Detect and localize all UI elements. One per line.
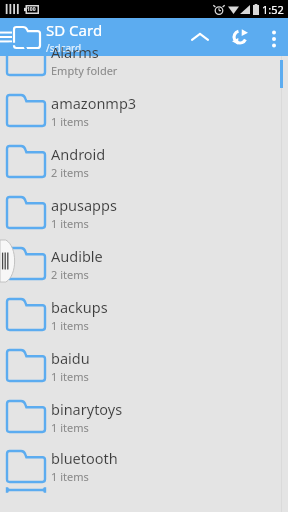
staticText: 1 items: [51, 114, 89, 129]
button[interactable]: baidu: [0, 340, 288, 391]
staticText: 2 items: [51, 165, 89, 180]
staticText: 1 items: [51, 318, 89, 333]
staticText: 1 items: [51, 469, 89, 484]
button[interactable]: amazonmp3: [0, 85, 288, 136]
button[interactable]: More options: [260, 18, 288, 56]
button[interactable]: apusapps: [0, 187, 288, 238]
staticText: bluetooth: [51, 448, 118, 468]
staticText: 1 items: [51, 216, 89, 231]
staticText: Alarms: [51, 42, 99, 62]
staticText: Android: [51, 144, 106, 164]
button[interactable]: Audible: [0, 238, 288, 289]
staticText: binarytoys: [51, 399, 123, 419]
staticText: 100: [27, 6, 36, 13]
staticText: 2 items: [51, 267, 89, 282]
staticText: 1 items: [51, 420, 89, 435]
button[interactable]: Go up: [180, 18, 220, 56]
button[interactable]: bluetooth: [0, 442, 288, 490]
button[interactable]: Android: [0, 136, 288, 187]
button[interactable]: Refresh: [220, 18, 260, 56]
staticText: /sdcard: [46, 41, 82, 55]
staticText: 1:52: [262, 2, 284, 17]
button[interactable]: Drawer handle: [0, 240, 13, 282]
button[interactable]: Alarms: [0, 34, 288, 85]
staticText: amazonmp3: [51, 93, 137, 113]
staticText: Empty folder: [51, 63, 118, 78]
staticText: 1 items: [51, 369, 89, 384]
staticText: baidu: [51, 348, 90, 368]
button[interactable]: backups: [0, 289, 288, 340]
staticText: Audible: [51, 246, 103, 266]
button[interactable]: Open navigation drawer: [0, 18, 13, 56]
staticText: backups: [51, 297, 108, 317]
staticText: SD Card: [46, 20, 103, 40]
staticText: apusapps: [51, 195, 117, 215]
button[interactable]: binarytoys: [0, 391, 288, 442]
